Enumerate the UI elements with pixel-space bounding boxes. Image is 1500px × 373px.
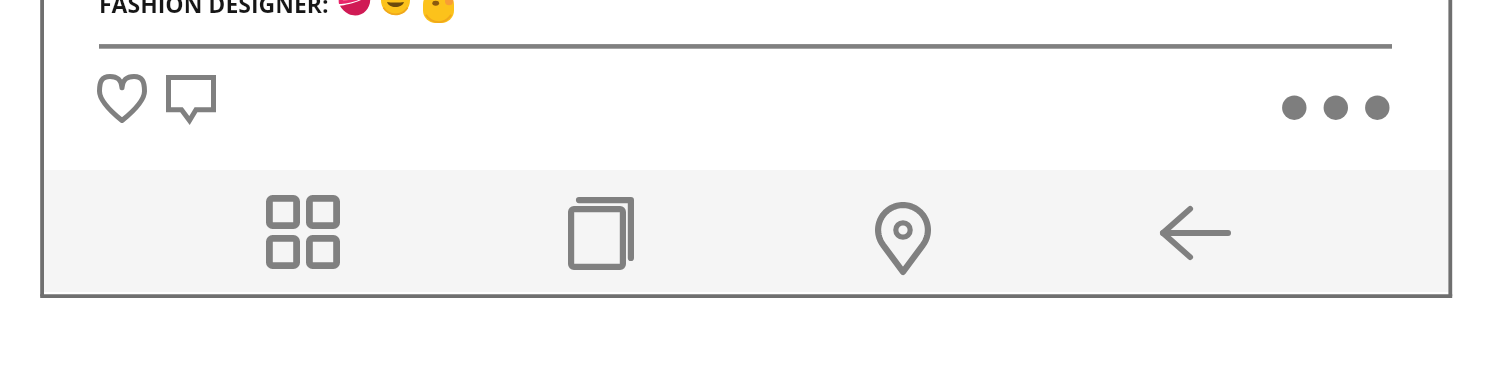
button[interactable]: Back [1142, 190, 1249, 276]
staticText: FASHION DESIGNER: [99, 0, 329, 19]
button[interactable]: Like [87, 64, 157, 134]
button[interactable]: Location [857, 186, 949, 291]
button[interactable]: Recents [550, 181, 653, 286]
button[interactable]: More options [1272, 88, 1390, 128]
button[interactable]: Apps [248, 179, 358, 285]
button[interactable]: Comment [156, 65, 226, 135]
